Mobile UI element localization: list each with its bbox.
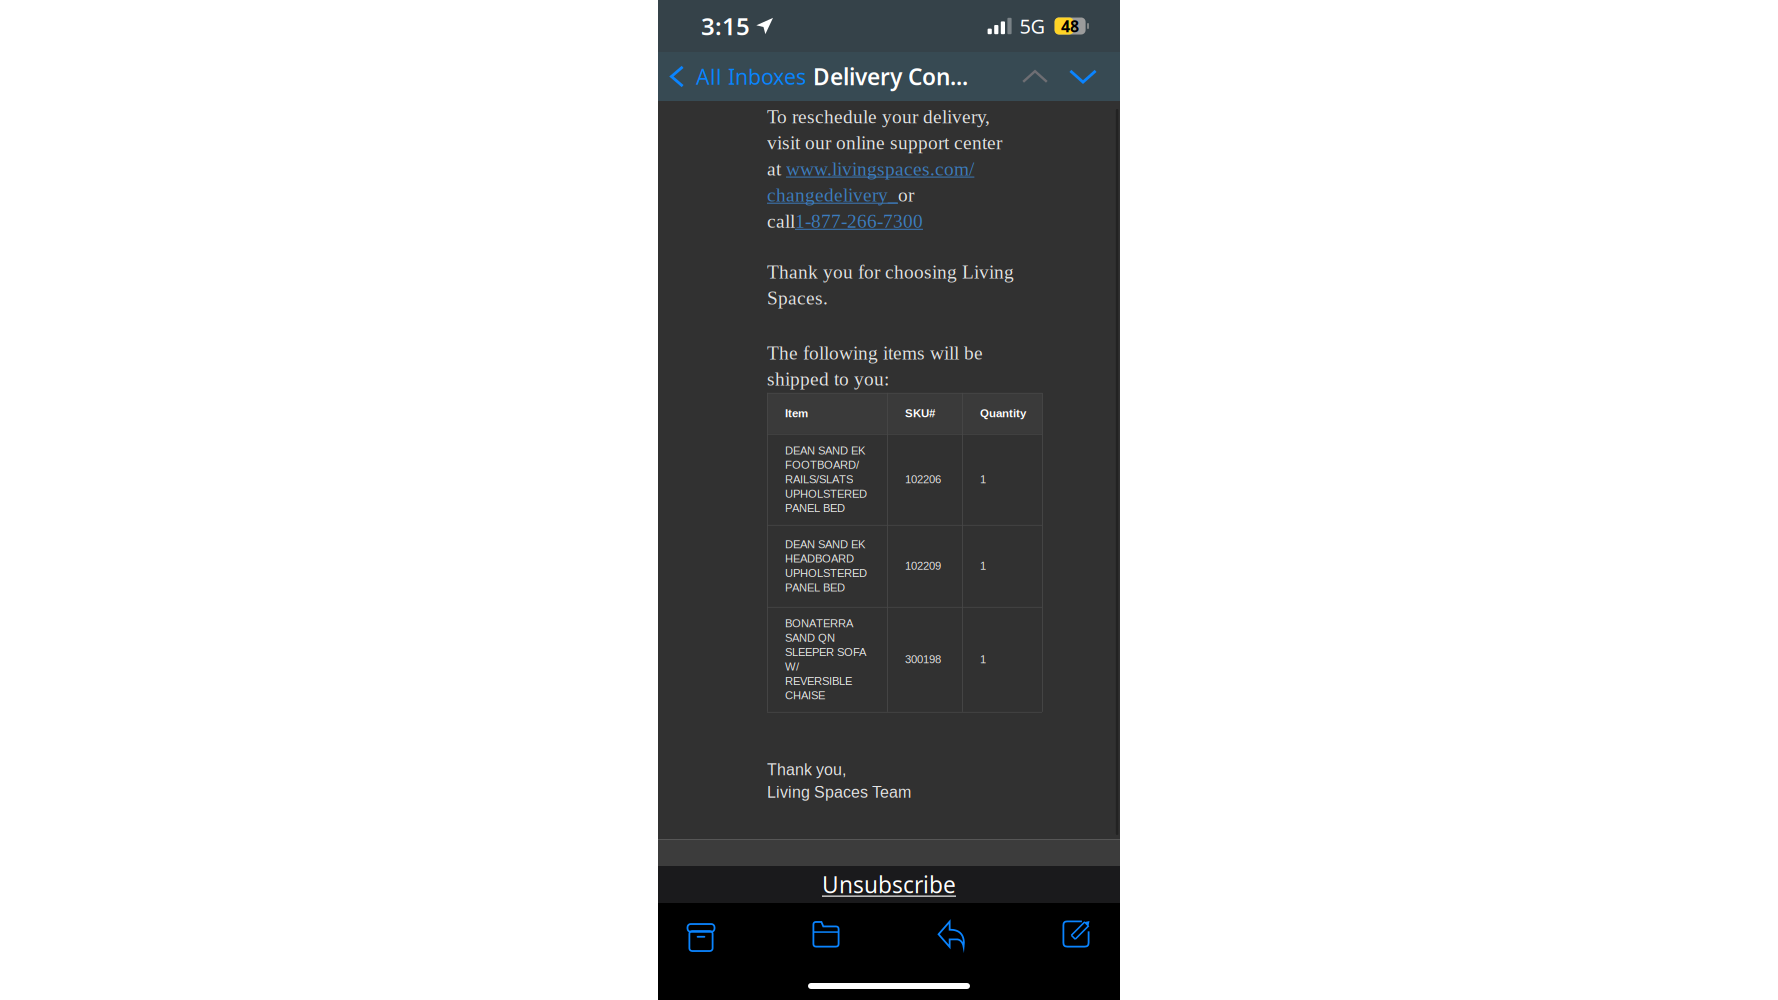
button[interactable]: changedelivery_ <box>767 184 898 206</box>
button[interactable]: Archive <box>671 911 731 957</box>
staticText: 5G <box>1020 13 1046 39</box>
staticText: 1 <box>980 653 986 666</box>
button[interactable]: www.livingspaces.com/ <box>786 158 974 180</box>
staticText: Unsubscribe <box>822 869 956 899</box>
staticText: SKU# <box>905 407 935 420</box>
staticText: Item <box>785 407 808 420</box>
button[interactable]: Previous message <box>1011 52 1059 101</box>
staticText: The following items will be <box>767 342 983 364</box>
staticText: shipped to you: <box>767 368 889 390</box>
button[interactable]: All Inboxes <box>658 52 809 101</box>
staticText: 48 <box>1061 15 1079 37</box>
staticText: BONATERRA SAND QN SLEEPER SOFA W/ REVERS… <box>785 617 866 702</box>
button[interactable]: Reply <box>921 911 981 957</box>
staticText: Spaces. <box>767 287 828 309</box>
staticText: at <box>767 158 786 180</box>
staticText: DEAN SAND EK HEADBOARD UPHOLSTERED PANEL… <box>785 538 867 594</box>
staticText: 1-877-266-7300 <box>795 210 923 232</box>
button[interactable]: Unsubscribe <box>658 866 1120 903</box>
staticText: visit our online support center <box>767 132 1002 153</box>
button[interactable]: 1-877-266-7300 <box>795 210 923 232</box>
staticText: or <box>898 184 914 206</box>
staticText: 1 <box>980 473 986 486</box>
staticText: To reschedule your delivery, <box>767 106 990 127</box>
staticText: DEAN SAND EK FOOTBOARD/ RAILS/SLATS UPHO… <box>785 444 867 514</box>
staticText: Delivery Con... <box>813 61 968 91</box>
staticText: 3:15 <box>701 10 750 42</box>
staticText: Quantity <box>980 407 1026 420</box>
staticText: call <box>767 210 795 232</box>
staticText: changedelivery_ <box>767 184 898 206</box>
staticText: 102209 <box>905 560 941 572</box>
staticText: All Inboxes <box>696 62 806 91</box>
staticText: Thank you for choosing Living <box>767 261 1014 283</box>
staticText: Thank you, <box>767 761 846 779</box>
button[interactable]: Next message <box>1059 52 1107 101</box>
staticText: 300198 <box>905 653 941 666</box>
button[interactable]: Move to folder <box>796 911 856 957</box>
staticText: www.livingspaces.com/ <box>786 158 974 180</box>
staticText: 102206 <box>905 473 941 486</box>
staticText: 1 <box>980 560 986 572</box>
button[interactable]: Compose <box>1046 911 1106 957</box>
staticText: Living Spaces Team <box>767 783 911 801</box>
